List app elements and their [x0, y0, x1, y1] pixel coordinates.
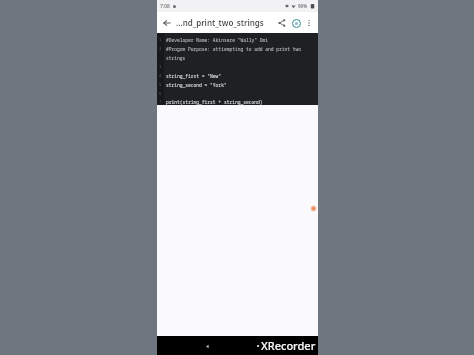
staticText: #Progrm Purpose: attiempting to add and …	[166, 46, 302, 52]
staticText: 3	[159, 64, 162, 69]
staticText: string_first = "New"	[166, 73, 222, 79]
staticText: …nd_print_two_strings	[176, 17, 275, 28]
staticText: print(string_first + string_second)	[166, 99, 263, 105]
button[interactable]: Share	[275, 16, 289, 30]
staticText: 6	[159, 91, 162, 96]
button[interactable]: More options	[303, 17, 315, 29]
staticText: 4	[159, 73, 162, 78]
staticText: #Developer Name: Akinsere "Wally" Omi	[166, 37, 268, 43]
staticText: string_second = "York"	[166, 82, 227, 88]
staticText: XRecorder	[261, 338, 316, 353]
staticText: strings	[166, 55, 186, 61]
button[interactable]: Run	[289, 16, 303, 30]
staticText: 96%	[298, 3, 308, 9]
staticText: 2	[159, 46, 162, 51]
staticText: 5	[159, 82, 162, 87]
button[interactable]: Back	[160, 16, 174, 30]
staticText: 7	[159, 99, 162, 104]
staticText: 1	[159, 37, 162, 42]
staticText: 7:08	[160, 3, 170, 10]
button[interactable]: Back	[201, 340, 213, 352]
